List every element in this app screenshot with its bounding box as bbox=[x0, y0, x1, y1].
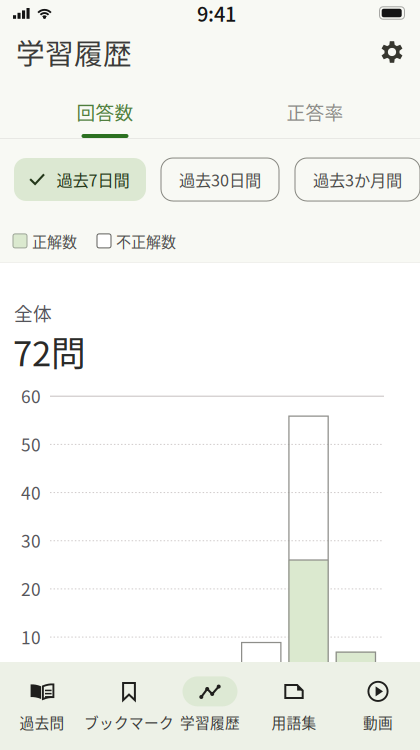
staticText: 10 bbox=[21, 624, 41, 649]
button[interactable]: 設定 bbox=[373, 35, 405, 69]
button[interactable]: 過去問 bbox=[0, 663, 84, 749]
staticText: 正解数 bbox=[32, 230, 77, 252]
staticText: 40 bbox=[21, 480, 41, 505]
button[interactable]: 用語集 bbox=[252, 663, 336, 749]
button[interactable]: 過去30日間 bbox=[161, 158, 279, 201]
staticText: 不正解数 bbox=[116, 230, 176, 252]
staticText: 9:41 bbox=[197, 0, 236, 27]
staticText: 50 bbox=[21, 431, 41, 456]
staticText: 正答率 bbox=[286, 98, 343, 125]
staticText: 過去問 bbox=[19, 711, 64, 733]
button[interactable]: 動画 bbox=[336, 663, 420, 749]
button[interactable]: 回答数 bbox=[0, 78, 210, 138]
button[interactable]: ブックマーク bbox=[84, 663, 168, 749]
staticText: ブックマーク bbox=[84, 711, 174, 733]
staticText: 過去7日間 bbox=[56, 168, 129, 191]
staticText: 過去3か月間 bbox=[313, 168, 402, 191]
staticText: 過去30日間 bbox=[179, 168, 261, 191]
staticText: 学習履歴 bbox=[180, 711, 240, 733]
staticText: 動画 bbox=[363, 711, 393, 733]
button[interactable]: 過去7日間 bbox=[14, 158, 146, 201]
button[interactable]: 正答率 bbox=[210, 78, 420, 138]
staticText: 72問 bbox=[13, 326, 86, 376]
staticText: 60 bbox=[21, 383, 41, 408]
button[interactable]: 過去3か月間 bbox=[295, 158, 420, 201]
staticText: 用語集 bbox=[271, 711, 316, 733]
staticText: 回答数 bbox=[76, 98, 133, 125]
staticText: 学習履歴 bbox=[16, 31, 132, 73]
staticText: 全体 bbox=[14, 299, 52, 326]
staticText: 30 bbox=[21, 528, 41, 553]
staticText: 20 bbox=[21, 576, 41, 601]
button[interactable]: 学習履歴 bbox=[168, 663, 252, 749]
